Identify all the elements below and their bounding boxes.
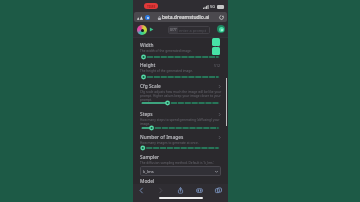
staticText: 512 <box>214 43 221 48</box>
button[interactable]: Aspect ratio portrait <box>212 38 220 46</box>
button[interactable]: Height slider <box>140 75 221 79</box>
button[interactable]: Generate <box>217 25 225 33</box>
button[interactable]: Recording <box>144 3 158 9</box>
button[interactable]: Forward <box>149 27 154 32</box>
button[interactable]: Width <box>140 42 221 48</box>
button[interactable]: Share <box>175 185 186 196</box>
button[interactable]: Back <box>136 185 147 196</box>
button[interactable]: Cfg Scale slider <box>140 101 221 105</box>
button[interactable]: Extensions <box>134 12 227 22</box>
staticText: prompt. <box>140 98 153 102</box>
button[interactable]: Width slider <box>140 55 221 59</box>
button[interactable]: Number of Images <box>140 134 221 140</box>
staticText: How many steps to spend generating (diff… <box>140 118 220 122</box>
staticText: 512 <box>214 63 221 68</box>
staticText: prompt. Higher values keep your image cl… <box>140 94 221 98</box>
staticText: Number of Images <box>140 134 184 140</box>
staticText: Cfg Scale <box>140 83 161 89</box>
button[interactable]: Height <box>140 62 221 68</box>
staticText: image. <box>140 122 151 126</box>
staticText: The height of the generated image. <box>140 69 193 73</box>
staticText: TIME <box>147 4 156 9</box>
button[interactable]: Steps slider <box>140 126 221 130</box>
staticText: beta.dreamstudio.ai <box>162 14 210 21</box>
staticText: 5G <box>210 4 216 9</box>
button[interactable]: DreamStudio <box>137 25 147 35</box>
button[interactable]: Aspect ratio landscape <box>212 47 220 55</box>
staticText: 0/77 <box>170 28 177 32</box>
staticText: Model <box>140 178 155 185</box>
staticText: The diffusion sampling method. Default i… <box>140 161 215 165</box>
staticText: Cfg scale adjusts how much the image wil… <box>140 90 222 94</box>
button[interactable]: Steps <box>140 111 221 117</box>
staticText: Width <box>140 42 154 48</box>
button[interactable]: Tabs <box>213 185 224 196</box>
staticText: enter a prompt <box>179 28 207 33</box>
button[interactable]: Enter a prompt <box>168 26 210 34</box>
button[interactable]: Bookmarks <box>194 185 205 196</box>
button[interactable]: Reload <box>219 15 224 20</box>
button[interactable]: Number of Images slider <box>140 146 221 150</box>
button[interactable]: k_lms <box>140 166 221 176</box>
button[interactable]: Cfg Scale <box>140 83 221 89</box>
staticText: Sampler <box>140 154 159 161</box>
staticText: Height <box>140 62 156 68</box>
staticText: Steps <box>140 111 153 117</box>
staticText: The width of the generated image. <box>140 49 192 53</box>
staticText: k_lms <box>143 169 154 174</box>
button[interactable]: Extensions <box>145 15 150 20</box>
staticText: How many images to generate at once. <box>140 141 199 145</box>
button[interactable]: Forward <box>155 185 166 196</box>
